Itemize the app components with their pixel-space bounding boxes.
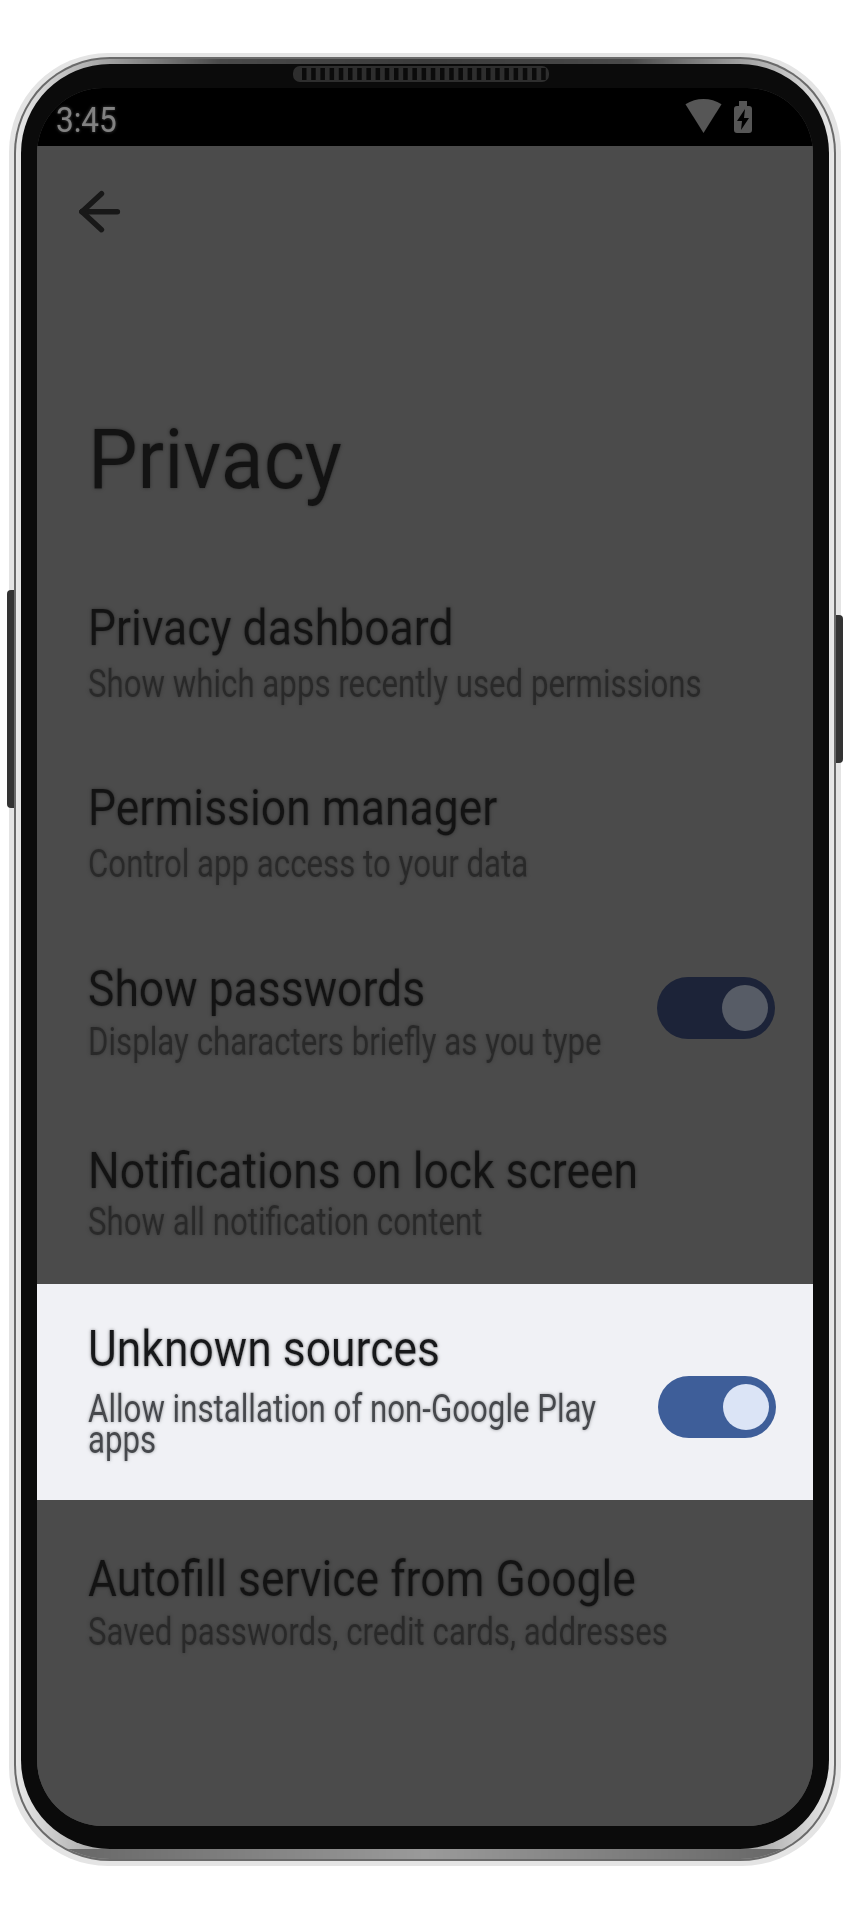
button[interactable]	[37, 915, 813, 1095]
button[interactable]	[37, 1097, 813, 1277]
staticText: Privacy dashboard	[88, 599, 454, 658]
button[interactable]: Unknown sources	[37, 1284, 813, 1500]
staticText: Notifications on lock screen	[88, 1142, 638, 1201]
button[interactable]	[37, 1505, 813, 1685]
staticText: Show all notification content	[88, 1200, 483, 1245]
staticText: Display characters briefly as you type	[88, 1020, 602, 1065]
staticText: Show passwords	[88, 960, 426, 1019]
staticText: Permission manager	[88, 779, 498, 838]
button[interactable]	[73, 188, 129, 236]
staticText: Privacy	[88, 410, 343, 508]
staticText: Unknown sources	[88, 1320, 440, 1379]
staticText: Autofill service from Google	[88, 1550, 636, 1609]
staticText: 3:45	[56, 100, 117, 141]
staticText: Allow installation of non-Google Play	[88, 1387, 597, 1432]
button[interactable]	[37, 554, 813, 734]
button[interactable]	[37, 734, 813, 914]
staticText: apps	[88, 1418, 156, 1463]
staticText: Show which apps recently used permission…	[88, 662, 702, 707]
button[interactable]	[657, 977, 775, 1039]
button[interactable]	[658, 1376, 776, 1438]
staticText: Control app access to your data	[88, 842, 529, 887]
staticText: Saved passwords, credit cards, addresses	[88, 1610, 668, 1655]
